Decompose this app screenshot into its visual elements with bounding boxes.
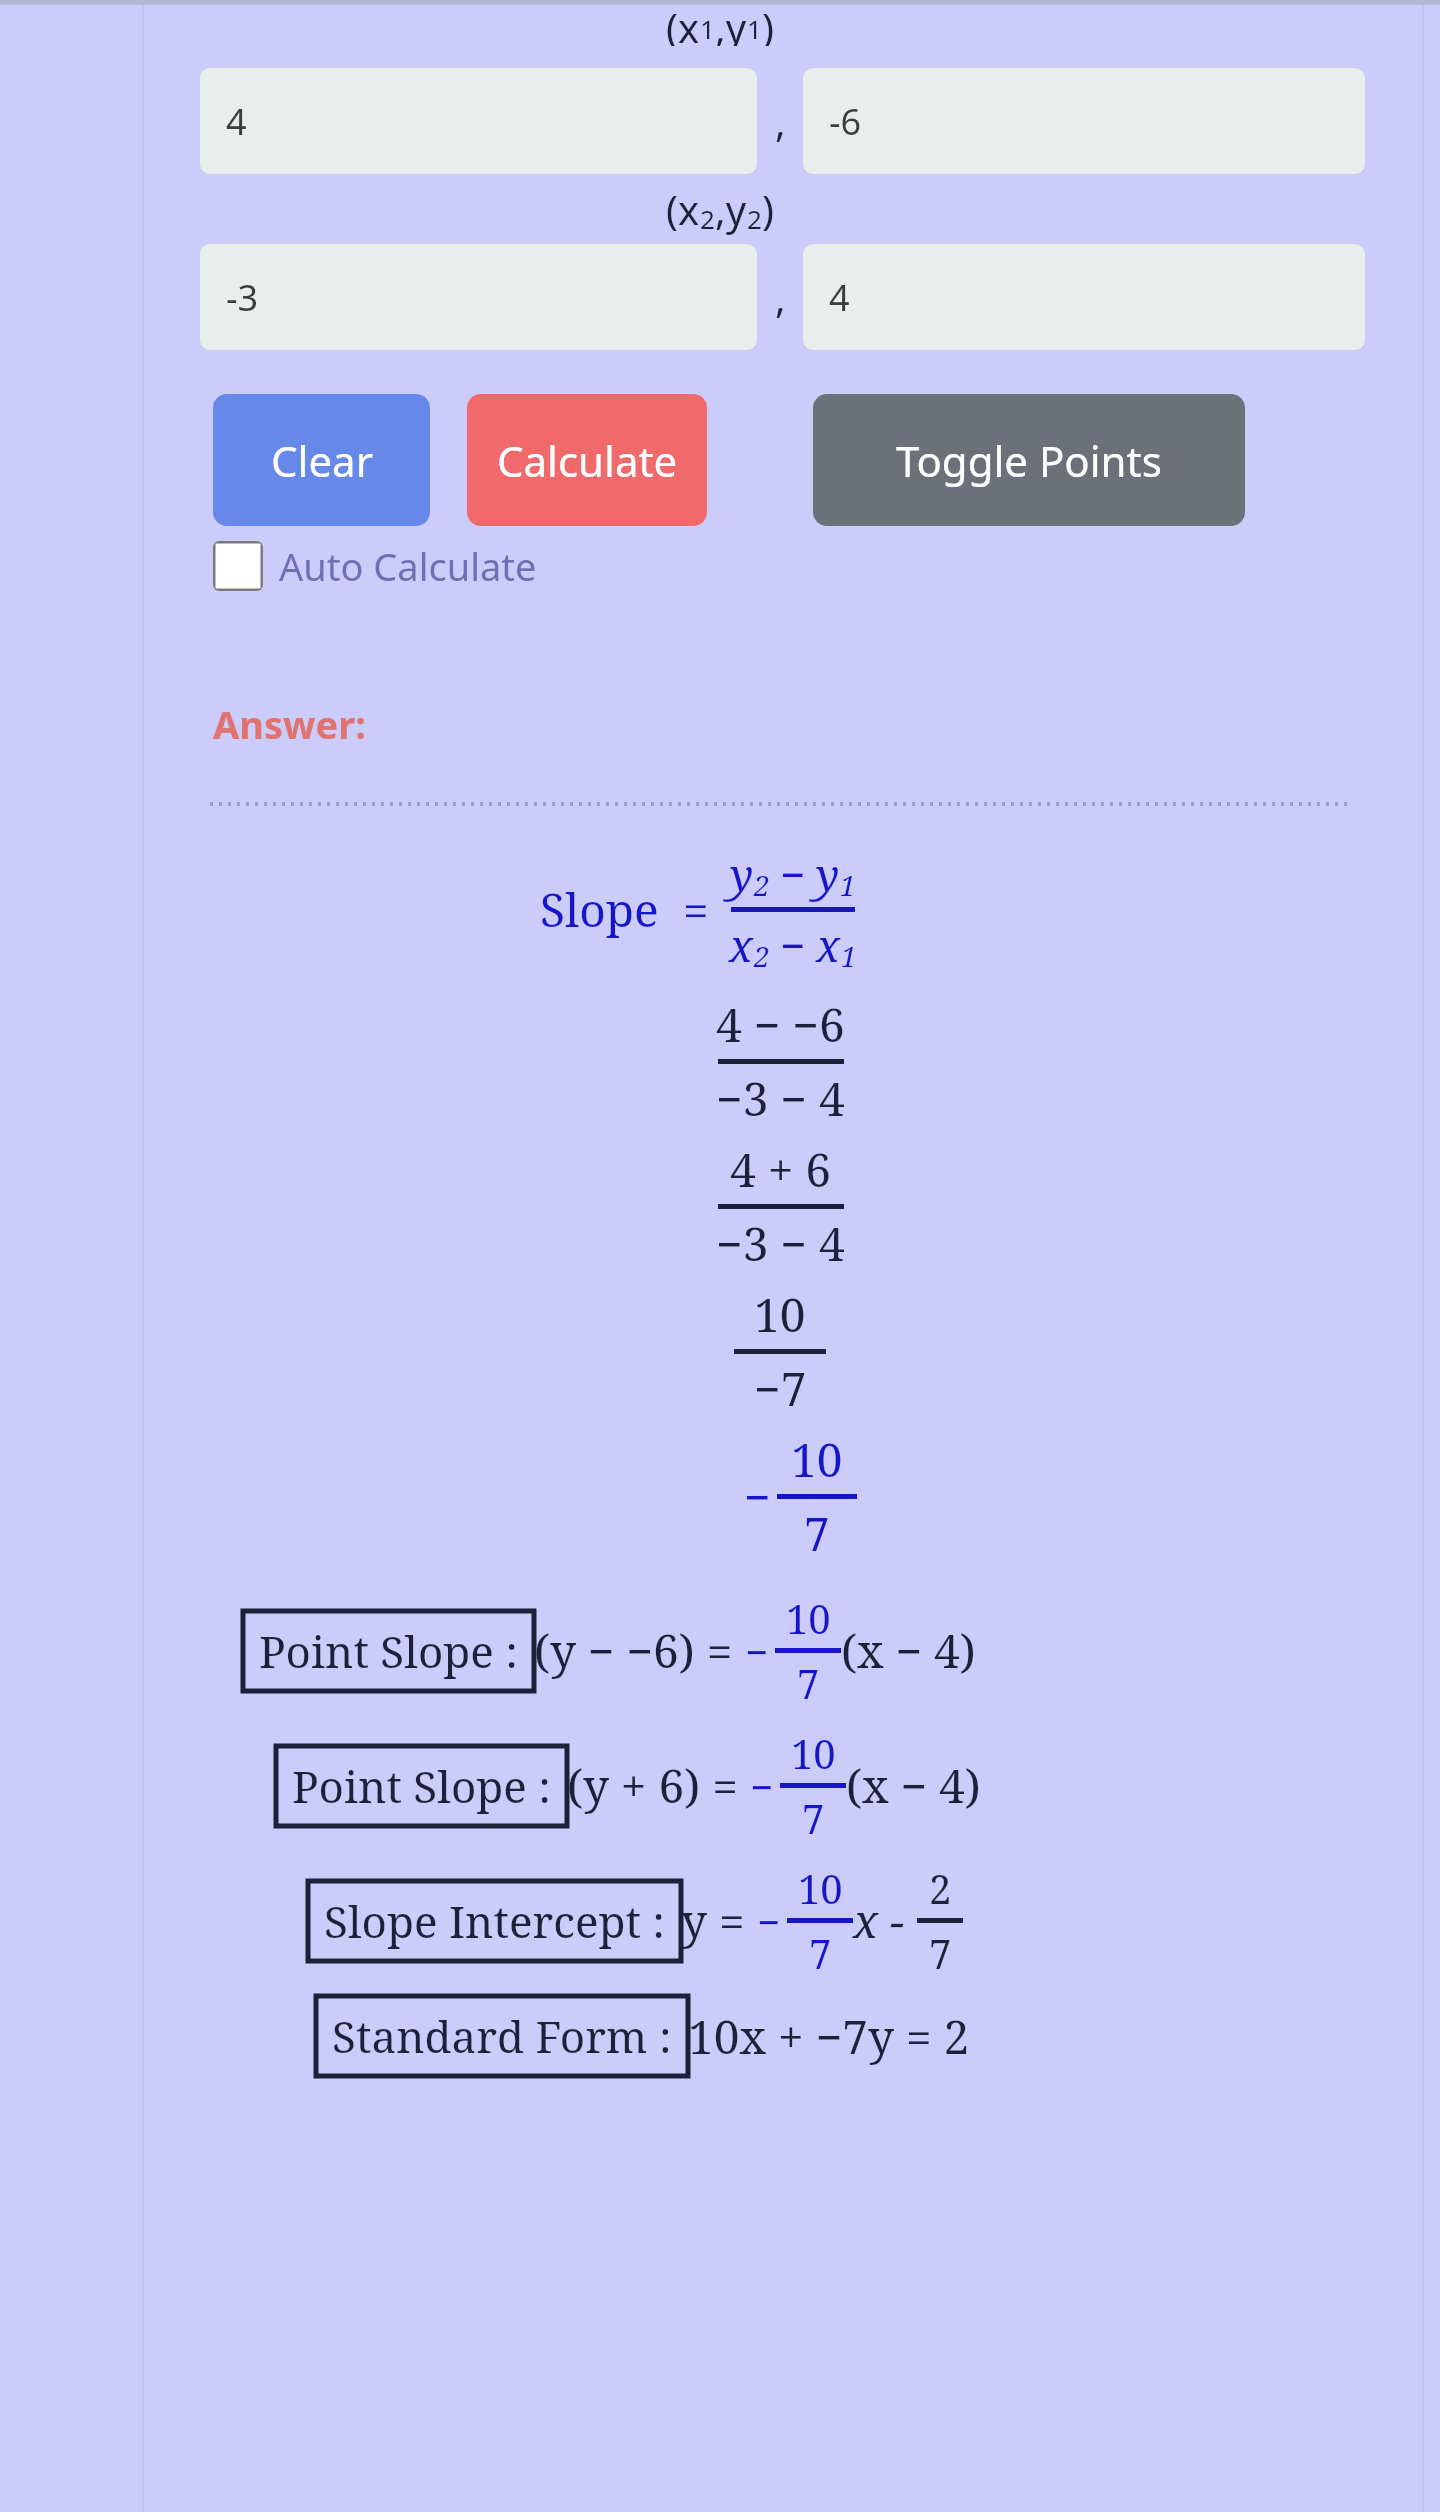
staticText: 2 (747, 201, 762, 236)
staticText: (x (666, 0, 700, 46)
button[interactable]: Auto Calculate (213, 540, 537, 592)
staticText: 7 (809, 1926, 832, 1980)
staticText: 7 (797, 1656, 820, 1710)
staticText: Toggle Points (896, 432, 1162, 489)
staticText: −7 (754, 1357, 807, 1420)
staticText: , (775, 94, 786, 148)
staticText: 1 (840, 866, 856, 904)
button[interactable]: -3 (200, 244, 757, 350)
staticText: Calculate (497, 432, 678, 489)
staticText: 4 (226, 97, 247, 146)
button[interactable]: Calculate (467, 394, 707, 526)
staticText: Standard Form : (332, 2006, 672, 2066)
staticText: 1 (700, 11, 715, 46)
staticText: Slope (540, 878, 659, 941)
staticText: ,y (715, 182, 747, 236)
staticText: Answer: (213, 698, 366, 750)
staticText: 10x + −7y = 2 (688, 2005, 970, 2068)
staticText: x (729, 915, 754, 975)
staticText: 4 (829, 273, 850, 322)
staticText: 7 (929, 1926, 952, 1980)
staticText: ,y (715, 0, 747, 46)
staticText: ) (762, 182, 774, 236)
staticText: − (780, 915, 806, 975)
staticText: -3 (226, 273, 259, 322)
staticText: (x − 4) (841, 1619, 976, 1682)
staticText: 10 (791, 1726, 836, 1780)
staticText: 4 − −6 (716, 993, 845, 1056)
staticText: x − (853, 1889, 917, 1952)
staticText: y (816, 844, 840, 904)
staticText: -6 (829, 97, 862, 146)
staticText: 10 (786, 1591, 831, 1645)
staticText: − (780, 844, 806, 904)
button[interactable]: Toggle Points (813, 394, 1245, 526)
staticText: − (750, 1759, 774, 1813)
staticText: −3 − 4 (716, 1212, 845, 1275)
staticText: Point Slope : (292, 1756, 551, 1816)
staticText: 2 (754, 937, 770, 975)
button[interactable]: 4 (803, 244, 1365, 350)
staticText: −3 − 4 (716, 1067, 845, 1130)
staticText: Point Slope : (259, 1621, 518, 1681)
staticText: x (816, 915, 841, 975)
button[interactable]: -6 (803, 68, 1365, 174)
button[interactable]: Clear (213, 394, 430, 526)
staticText: (y − −6) = (534, 1619, 745, 1682)
staticText: = (683, 878, 709, 941)
staticText: (y + 6) = (567, 1754, 750, 1817)
staticText: 2 (929, 1861, 952, 1915)
staticText: 10 (798, 1861, 843, 1915)
staticText: 2 (754, 866, 770, 904)
staticText: − (757, 1894, 781, 1948)
staticText: y (730, 844, 754, 904)
staticText: 1 (841, 937, 857, 975)
staticText: 7 (802, 1791, 825, 1845)
staticText: 7 (804, 1502, 830, 1565)
staticText: − (744, 1465, 771, 1528)
staticText: 4 + 6 (730, 1138, 832, 1201)
button[interactable]: 4 (200, 68, 757, 174)
staticText: (x − 4) (846, 1754, 981, 1817)
staticText: Clear (271, 432, 373, 489)
staticText: 2 (700, 201, 715, 236)
staticText: , (775, 270, 786, 324)
staticText: 1 (747, 11, 762, 46)
staticText: (x (666, 182, 700, 236)
staticText: Auto Calculate (279, 540, 537, 592)
staticText: y = (681, 1889, 757, 1952)
staticText: − (745, 1624, 769, 1678)
staticText: 10 (791, 1428, 843, 1491)
staticText: Slope Intercept : (324, 1891, 665, 1951)
staticText: 10 (754, 1283, 806, 1346)
staticText: ) (762, 0, 774, 46)
